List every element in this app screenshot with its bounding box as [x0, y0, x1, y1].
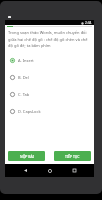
staticText: C. Tab	[18, 92, 30, 97]
button[interactable]: D. CapsLock	[5, 103, 94, 120]
button[interactable]: Back	[21, 166, 30, 175]
button[interactable]: C. Tab	[5, 86, 94, 103]
staticText: 2:34	[85, 21, 92, 25]
staticText: Trong soạn thảo Words, muốn chuyển đổi g…	[8, 30, 91, 48]
button[interactable]: NỘP BÀI	[8, 151, 45, 161]
staticText: A. Insert	[18, 58, 34, 63]
staticText: NỘP BÀI	[20, 154, 34, 159]
button[interactable]: Recent apps	[70, 166, 79, 175]
button[interactable]: A. Insert	[5, 52, 94, 69]
staticText: D. CapsLock	[18, 109, 41, 114]
button[interactable]: B. Del	[5, 69, 94, 86]
button[interactable]: TIẾP TỤC	[54, 151, 91, 161]
staticText: B. Del	[18, 75, 29, 80]
staticText: TIẾP TỤC	[65, 154, 80, 159]
button[interactable]: Home	[45, 166, 54, 175]
